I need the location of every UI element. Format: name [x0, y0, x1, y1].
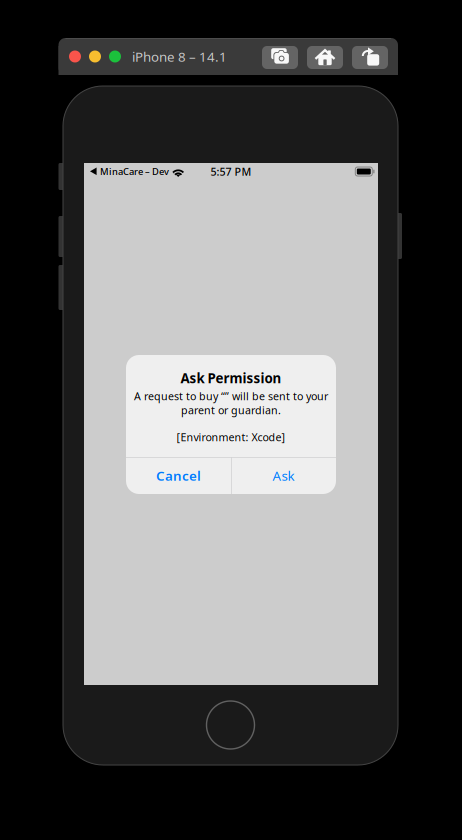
button[interactable]: Screenshot: [262, 46, 298, 69]
staticText: 5:57 PM: [210, 164, 251, 179]
staticText: parent or guardian.: [181, 403, 281, 417]
button[interactable]: Ask: [231, 457, 336, 494]
staticText: A request to buy “” will be sent to your: [134, 389, 328, 403]
staticText: Ask: [272, 467, 294, 484]
staticText: Ask Permission: [180, 369, 281, 387]
staticText: Cancel: [156, 467, 201, 484]
button[interactable]: Home: [307, 46, 343, 69]
staticText: iPhone 8 – 14.1: [132, 48, 227, 65]
staticText: MinaCare – Dev: [100, 165, 169, 178]
staticText: [Environment: Xcode]: [176, 430, 285, 444]
button[interactable]: Rotate: [352, 46, 388, 69]
button[interactable]: Cancel: [126, 457, 231, 494]
